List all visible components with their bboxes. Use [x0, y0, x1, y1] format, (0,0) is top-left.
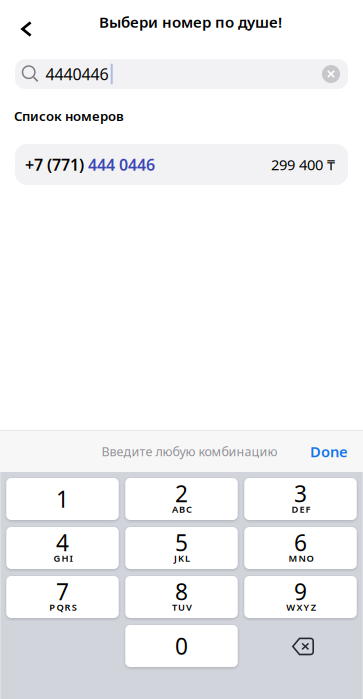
- staticText: ABC: [172, 503, 192, 515]
- staticText: 6: [294, 527, 307, 557]
- staticText: 9: [294, 576, 307, 606]
- staticText: WXYZ: [286, 601, 316, 613]
- button[interactable]: Done: [295, 431, 363, 472]
- button[interactable]: 6: [244, 527, 357, 569]
- staticText: 444 0446: [88, 154, 155, 175]
- staticText: JKL: [174, 552, 190, 564]
- button[interactable]: 2: [125, 478, 238, 520]
- staticText: 1: [56, 484, 69, 514]
- staticText: 4440446: [45, 63, 108, 85]
- staticText: 2: [175, 478, 188, 508]
- staticText: +7 (771): [25, 154, 88, 175]
- staticText: MNO: [288, 552, 314, 564]
- button[interactable]: 1: [6, 478, 119, 520]
- button[interactable]: 8: [125, 576, 238, 618]
- staticText: 8: [175, 576, 188, 606]
- button[interactable]: 4: [6, 527, 119, 569]
- button[interactable]: Back: [0, 0, 53, 44]
- staticText: Список номеров: [14, 107, 124, 125]
- staticText: 5: [175, 527, 188, 557]
- staticText: 3: [294, 478, 307, 508]
- staticText: Введите любую комбинацию: [101, 443, 277, 460]
- staticText: 299 400 ₸: [271, 154, 335, 174]
- button[interactable]: 3: [244, 478, 357, 520]
- staticText: 4: [56, 527, 69, 557]
- button[interactable]: Delete: [244, 625, 357, 667]
- staticText: TUV: [172, 601, 192, 613]
- button[interactable]: 9: [244, 576, 357, 618]
- staticText: GHI: [53, 552, 73, 564]
- staticText: 7: [56, 576, 69, 606]
- staticText: 0: [175, 631, 188, 661]
- staticText: PQRS: [49, 601, 77, 613]
- staticText: DEF: [291, 503, 311, 515]
- button[interactable]: 7: [6, 576, 119, 618]
- staticText: Выбери номер по душе!: [99, 12, 282, 32]
- staticText: Done: [310, 442, 348, 461]
- button[interactable]: 0: [125, 625, 238, 667]
- button[interactable]: 5: [125, 527, 238, 569]
- button[interactable]: +7 (771): [15, 144, 348, 185]
- button[interactable]: Clear text: [322, 65, 340, 83]
